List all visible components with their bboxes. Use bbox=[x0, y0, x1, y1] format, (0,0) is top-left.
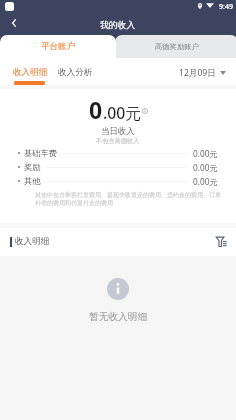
button[interactable]: 12月09日 bbox=[179, 67, 226, 79]
staticText: .00元 bbox=[103, 102, 142, 124]
button[interactable]: Back bbox=[2, 11, 26, 35]
button[interactable]: 收入分析 bbox=[58, 67, 93, 78]
button[interactable]: 平台账户 bbox=[0, 35, 116, 58]
staticText: 暂无收入明细 bbox=[89, 311, 148, 323]
staticText: 不包含高德收入 bbox=[96, 137, 140, 145]
staticText: 12月09日 bbox=[179, 67, 216, 79]
staticText: 0 bbox=[89, 94, 103, 125]
staticText: 收入分析 bbox=[58, 67, 93, 78]
staticText: 0.00元 bbox=[193, 162, 218, 173]
staticText: 9:49 bbox=[219, 1, 234, 11]
staticText: 平台账户 bbox=[41, 41, 76, 52]
button[interactable]: 收入明细 bbox=[13, 67, 48, 78]
staticText: 我的收入 bbox=[100, 20, 136, 31]
staticText: 0.00元 bbox=[193, 148, 218, 159]
staticText: 收入明细 bbox=[13, 67, 48, 78]
staticText: 0.00元 bbox=[193, 176, 218, 187]
button[interactable]: 高德奖励账户 bbox=[115, 35, 236, 58]
staticText: 基础车费 bbox=[24, 148, 57, 158]
staticText: 收入明细 bbox=[15, 236, 50, 247]
staticText: 其他中包含乘客打赏费用、提现失败退还的费用、违约金的费用、订单补偿的费用和代退付… bbox=[35, 191, 221, 207]
staticText: 其他 bbox=[24, 176, 41, 186]
staticText: 当日收入 bbox=[101, 126, 135, 137]
button[interactable]: Filter bbox=[214, 234, 228, 248]
staticText: 奖励 bbox=[24, 162, 41, 172]
staticText: 高德奖励账户 bbox=[155, 42, 199, 51]
